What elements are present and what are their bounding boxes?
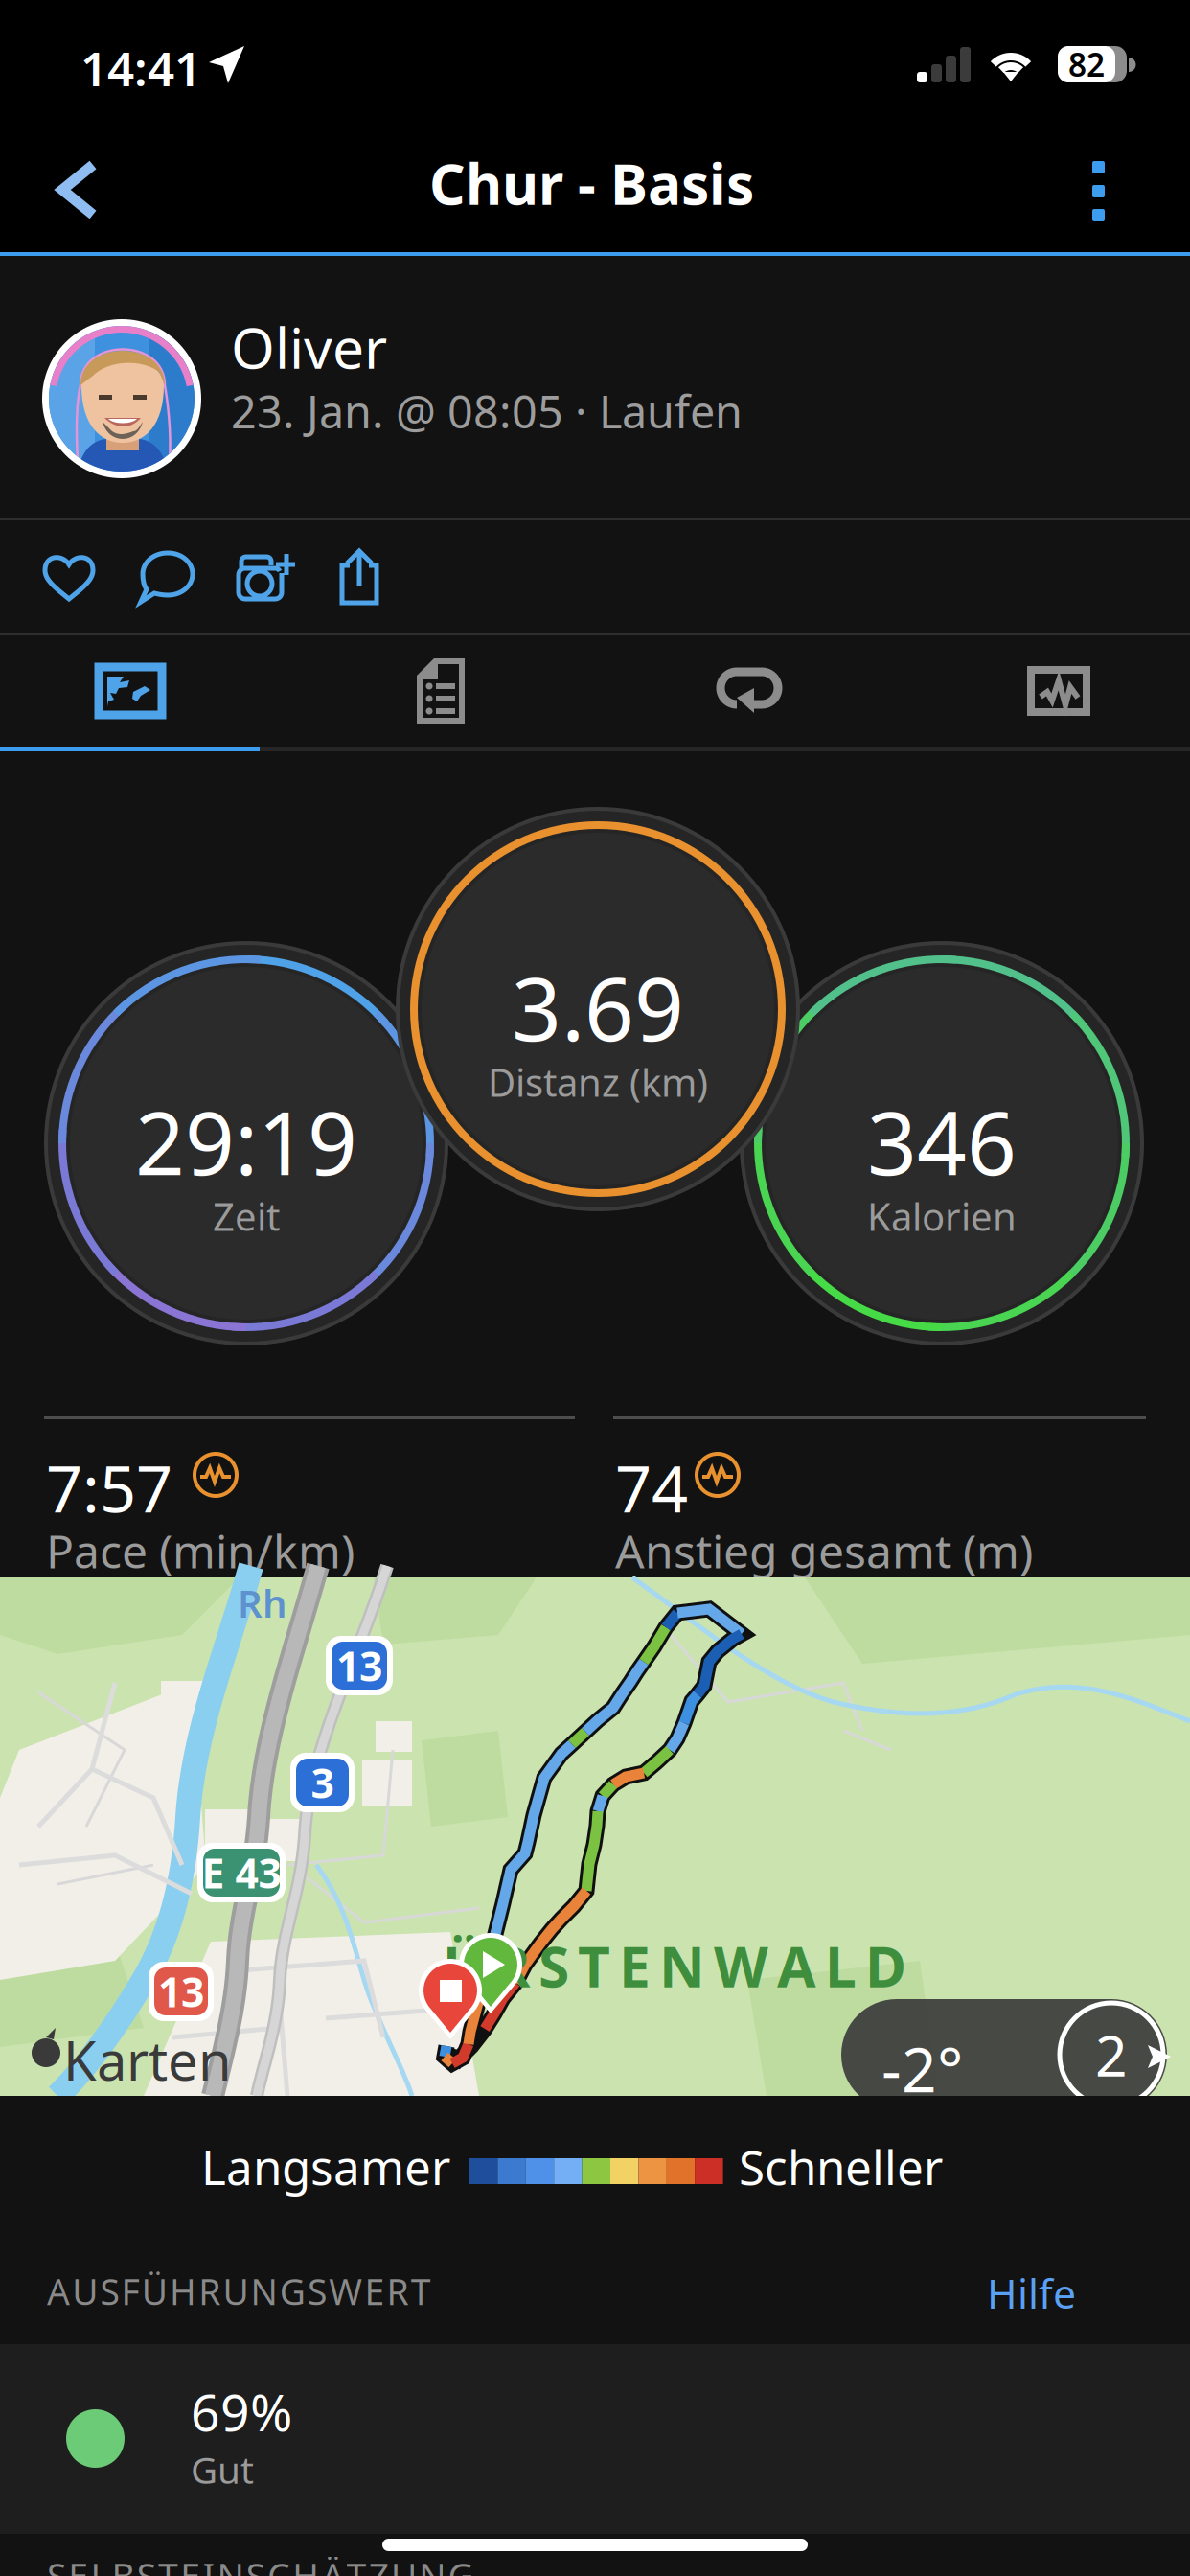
button[interactable]: Back [0, 126, 153, 252]
staticText: R [387, 2267, 409, 2315]
staticText: Zeit [213, 1191, 280, 1242]
staticText: N [217, 2552, 244, 2576]
staticText: Karten [63, 2024, 232, 2095]
staticText: Ä [321, 2552, 344, 2576]
button[interactable]: Add photo [217, 520, 314, 633]
staticText: S [308, 2267, 327, 2315]
staticText: Pace (min/km) [46, 1520, 355, 1581]
staticText: E [68, 2552, 88, 2576]
staticText: N [251, 2267, 277, 2315]
staticText: U [72, 2267, 98, 2315]
staticText: E [180, 2552, 200, 2576]
staticText: 74 [615, 1445, 688, 1530]
staticText: Anstieg gesamt (m) [615, 1520, 1033, 1581]
staticText: F [121, 2267, 140, 2315]
staticText: T [578, 1928, 610, 2003]
staticText: U [391, 2552, 417, 2576]
button[interactable]: Hilfe [987, 2265, 1076, 2320]
staticText: Langsamer [201, 2135, 450, 2198]
staticText: H [170, 2267, 196, 2315]
staticText: 14:41 [80, 36, 201, 99]
button[interactable]: Share [310, 520, 408, 633]
staticText: 23. Jan. @ 08:05 · Laufen [231, 381, 743, 441]
button[interactable]: Charts [910, 635, 1190, 747]
staticText: E 43 [202, 1845, 281, 1900]
button[interactable]: Laps [601, 635, 898, 747]
staticText: 2 [1095, 2017, 1128, 2092]
staticText: 7:57 [46, 1445, 172, 1530]
staticText: W [329, 2267, 362, 2315]
staticText: 13 [336, 1638, 382, 1693]
staticText: S [47, 2552, 66, 2576]
button[interactable]: Details [292, 635, 589, 747]
staticText: G [448, 2552, 474, 2576]
staticText: D [865, 1928, 906, 2003]
staticText: W [714, 1928, 768, 2003]
staticText: Gut [191, 2445, 254, 2494]
staticText: R [199, 2267, 221, 2315]
staticText: S [538, 1928, 569, 2003]
staticText: 346 [867, 1084, 1017, 1199]
staticText: S [100, 2267, 119, 2315]
staticText: L [90, 2552, 110, 2576]
staticText: E [364, 2267, 385, 2315]
staticText: S [246, 2552, 265, 2576]
staticText: H [292, 2552, 319, 2576]
staticText: T [411, 2267, 431, 2315]
staticText: -2° [881, 2028, 963, 2109]
staticText: U [223, 2267, 249, 2315]
button[interactable]: Map [0, 635, 279, 747]
staticText: G [280, 2267, 305, 2315]
staticText: Hilfe [987, 2265, 1076, 2320]
staticText: N [659, 1928, 705, 2003]
staticText: 3.69 [512, 950, 684, 1065]
staticText: 82 [1068, 43, 1105, 85]
staticText: Z [369, 2552, 389, 2576]
staticText: 13 [158, 1964, 204, 2019]
staticText: A [777, 1928, 816, 2003]
staticText: R [493, 1928, 530, 2003]
staticText: Ü [443, 1928, 485, 2003]
staticText: C [267, 2552, 290, 2576]
staticText: Rh [238, 1577, 287, 1628]
staticText: Distanz (km) [488, 1056, 708, 1107]
staticText: I [203, 2552, 215, 2576]
staticText: 3 [311, 1755, 334, 1810]
staticText: L [825, 1928, 857, 2003]
staticText: Oliver [231, 310, 387, 384]
staticText: Kalorien [867, 1191, 1017, 1242]
button[interactable]: More options [1037, 126, 1190, 252]
staticText: T [346, 2552, 367, 2576]
button[interactable]: Like [20, 520, 118, 633]
staticText: E [619, 1928, 651, 2003]
staticText: T [158, 2552, 178, 2576]
staticText: N [419, 2552, 446, 2576]
staticText: Schneller [739, 2135, 943, 2198]
button[interactable]: Comment [118, 520, 216, 633]
button[interactable]: 69% [0, 2344, 1190, 2534]
staticText: S [137, 2552, 156, 2576]
staticText: A [47, 2267, 70, 2315]
staticText: 29:19 [135, 1084, 357, 1199]
staticText: Chur - Basis [429, 146, 754, 220]
staticText: Ü [142, 2267, 167, 2315]
staticText: B [112, 2552, 135, 2576]
staticText: 69% [191, 2378, 292, 2445]
